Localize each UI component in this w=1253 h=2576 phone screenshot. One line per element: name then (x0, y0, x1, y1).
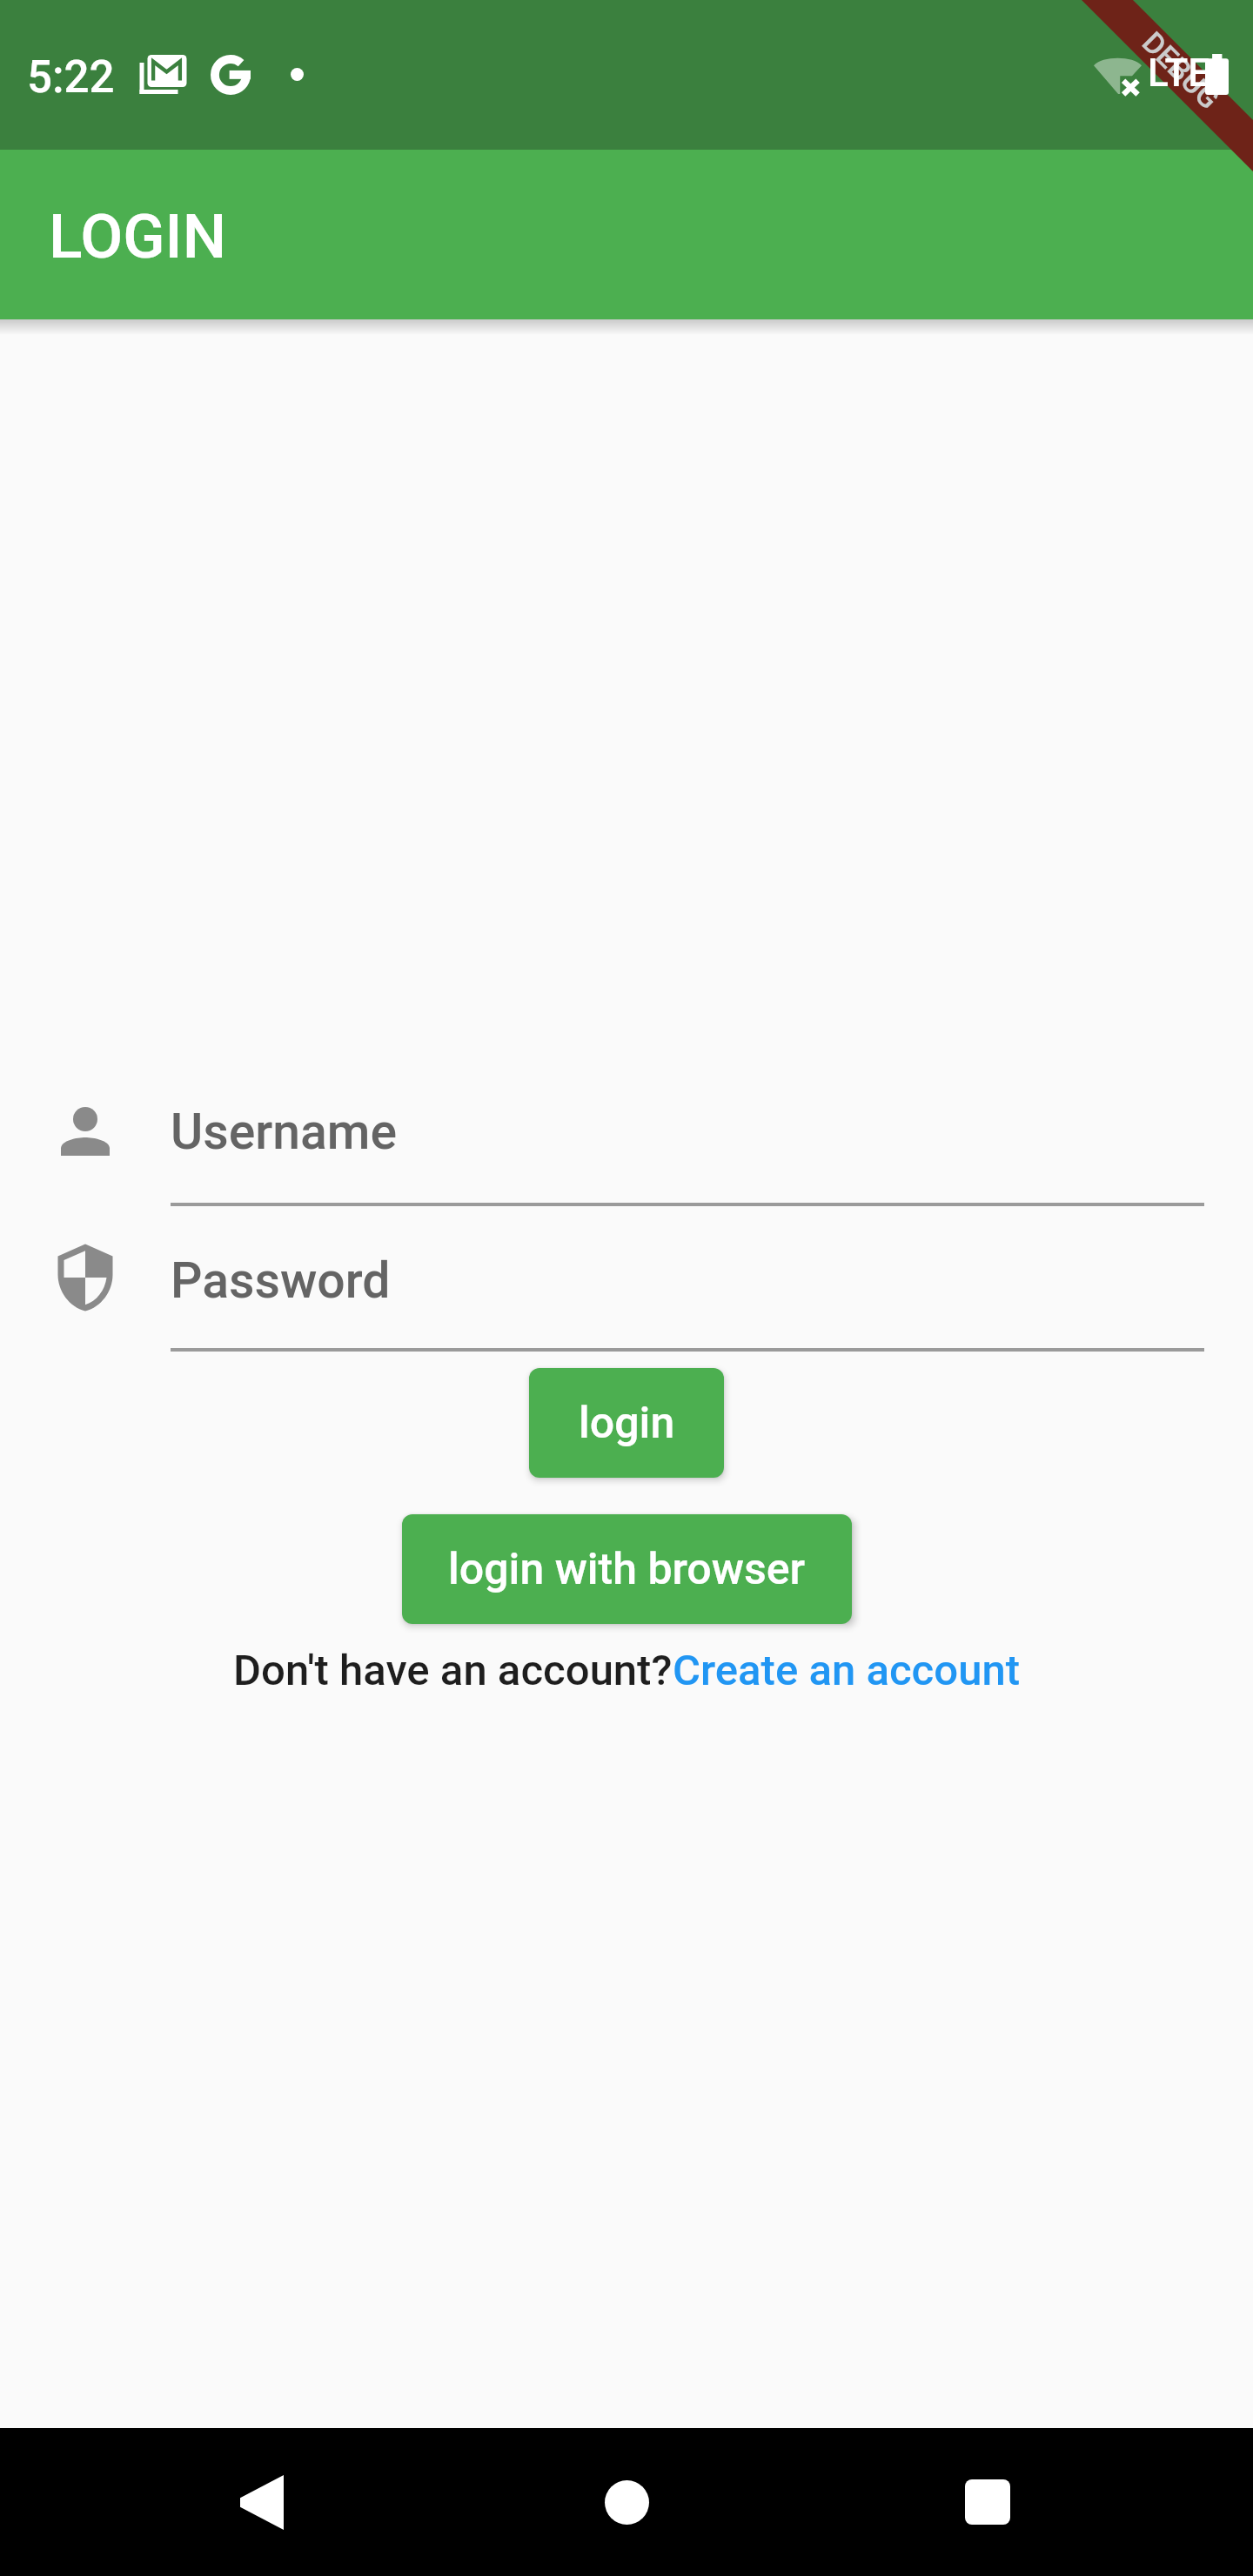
staticText: login with browser (448, 1544, 806, 1595)
staticText: login (579, 1398, 675, 1449)
button[interactable]: Username (171, 1092, 1204, 1206)
button[interactable]: Home (557, 2428, 696, 2567)
staticText: Don't have an account? (233, 1646, 673, 1695)
staticText: Username (171, 1103, 398, 1161)
button[interactable]: Back (191, 2428, 331, 2576)
staticText: 5:22 (27, 51, 115, 104)
button[interactable]: Password (171, 1238, 1204, 1352)
button[interactable]: Create an account (673, 1646, 1020, 1695)
button[interactable]: login with browser (402, 1514, 852, 1624)
staticText: LTE (1148, 50, 1210, 96)
staticText: Password (171, 1251, 391, 1310)
staticText: DEBUG (1135, 25, 1227, 116)
button[interactable]: login (529, 1368, 724, 1478)
staticText: LOGIN (49, 200, 227, 272)
button[interactable]: Recents (918, 2428, 1057, 2567)
